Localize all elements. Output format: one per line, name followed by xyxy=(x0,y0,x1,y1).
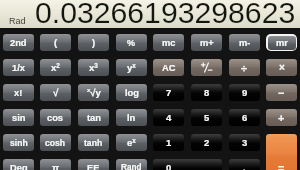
button[interactable]: 2 xyxy=(191,134,222,151)
button[interactable]: Decimal point xyxy=(229,159,260,170)
staticText: Deg xyxy=(10,163,28,170)
staticText: 0.03266193298623 xyxy=(35,0,296,24)
button[interactable]: 6 xyxy=(229,109,260,126)
button[interactable]: x-th root of y xyxy=(78,84,109,101)
staticText: cos xyxy=(47,113,64,123)
staticText: Rand xyxy=(121,163,142,170)
staticText: ex xyxy=(127,137,136,148)
button[interactable]: Plus minus xyxy=(191,59,222,76)
staticText: mc xyxy=(162,38,176,48)
button[interactable]: x2 xyxy=(40,59,71,76)
button[interactable]: 1 xyxy=(153,134,184,151)
staticText: tan xyxy=(87,113,101,123)
staticText: sinh xyxy=(10,138,28,148)
staticText: ln xyxy=(127,113,136,123)
staticText: EE xyxy=(87,163,100,170)
staticText: − xyxy=(278,87,285,99)
button[interactable]: cos xyxy=(40,109,71,126)
button[interactable]: Minus xyxy=(266,84,297,101)
button[interactable]: Square root xyxy=(40,84,71,101)
button[interactable]: ln xyxy=(116,109,147,126)
button[interactable]: EE xyxy=(78,159,109,170)
button[interactable]: x3 xyxy=(78,59,109,76)
staticText: ) xyxy=(92,37,96,48)
staticText: 2nd xyxy=(10,38,27,48)
button[interactable]: 7 xyxy=(153,84,184,101)
button[interactable]: Deg xyxy=(3,159,34,170)
staticText: mr xyxy=(276,38,288,48)
button[interactable]: sinh xyxy=(3,134,34,151)
staticText: × xyxy=(279,62,285,73)
button[interactable]: 3 xyxy=(229,134,260,151)
button[interactable]: 5 xyxy=(191,109,222,126)
staticText: log xyxy=(125,88,139,98)
button[interactable]: tan xyxy=(78,109,109,126)
staticText: = xyxy=(278,162,285,170)
staticText: yx xyxy=(127,62,136,73)
button[interactable]: 8 xyxy=(191,84,222,101)
button[interactable]: 9 xyxy=(229,84,260,101)
staticText: x2 xyxy=(51,62,60,73)
staticText: x√y xyxy=(87,87,101,98)
staticText: 4 xyxy=(166,112,172,123)
staticText: x! xyxy=(14,88,23,98)
staticText: 6 xyxy=(242,112,248,123)
button[interactable]: m- xyxy=(229,34,260,51)
button[interactable]: Equals xyxy=(266,134,297,170)
button[interactable]: tanh xyxy=(78,134,109,151)
staticText: cosh xyxy=(45,138,66,148)
staticText: + xyxy=(278,112,285,124)
staticText: x3 xyxy=(89,62,98,73)
staticText: sin xyxy=(12,113,26,123)
button[interactable]: Rand xyxy=(116,159,147,170)
button[interactable]: cosh xyxy=(40,134,71,151)
button[interactable]: ( xyxy=(40,34,71,51)
button[interactable]: ) xyxy=(78,34,109,51)
button[interactable]: AC xyxy=(153,59,184,76)
button[interactable]: 0 xyxy=(153,159,222,170)
staticText: m+ xyxy=(200,38,214,48)
staticText: 1/x xyxy=(12,63,25,73)
staticText: ÷ xyxy=(241,62,248,74)
staticText: 0 xyxy=(166,162,172,170)
staticText: 1 xyxy=(166,137,172,148)
button[interactable]: 1/x xyxy=(3,59,34,76)
staticText: 3 xyxy=(242,137,248,148)
button[interactable]: m+ xyxy=(191,34,222,51)
staticText: AC xyxy=(162,63,176,73)
button[interactable]: ex xyxy=(116,134,147,151)
staticText: π xyxy=(52,162,60,170)
button[interactable]: mr xyxy=(266,34,297,51)
button[interactable]: mc xyxy=(153,34,184,51)
button[interactable]: 2nd xyxy=(3,34,34,51)
button[interactable]: Multiply xyxy=(266,59,297,76)
button[interactable]: Pi xyxy=(40,159,71,170)
button[interactable]: Divide xyxy=(229,59,260,76)
staticText: m- xyxy=(239,38,251,48)
staticText: tanh xyxy=(84,138,103,148)
staticText: 9 xyxy=(242,87,248,98)
button[interactable]: 4 xyxy=(153,109,184,126)
staticText: 2 xyxy=(204,137,210,148)
staticText: Rad xyxy=(9,16,26,26)
button[interactable]: log xyxy=(116,84,147,101)
staticText: √ xyxy=(53,87,59,98)
button[interactable]: % xyxy=(116,34,147,51)
staticText: 7 xyxy=(166,87,172,98)
staticText: ( xyxy=(54,37,58,48)
staticText: 5 xyxy=(204,112,210,123)
staticText: . xyxy=(243,162,246,170)
staticText: 8 xyxy=(204,87,210,98)
button[interactable]: x! xyxy=(3,84,34,101)
staticText: % xyxy=(127,38,136,48)
button[interactable]: sin xyxy=(3,109,34,126)
button[interactable]: yx xyxy=(116,59,147,76)
button[interactable]: Plus xyxy=(266,109,297,126)
